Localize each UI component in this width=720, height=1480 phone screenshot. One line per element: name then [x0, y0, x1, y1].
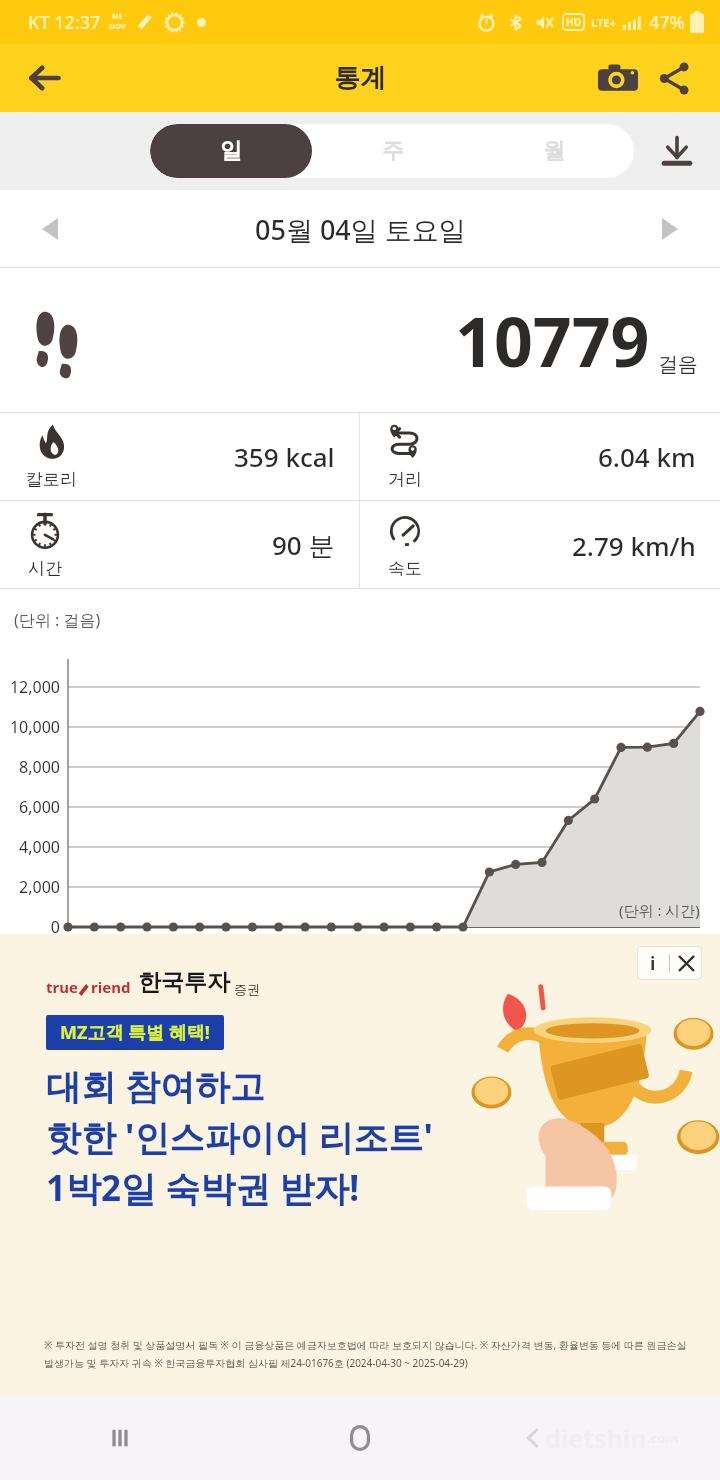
- button[interactable]: Next day: [644, 203, 696, 255]
- staticText: (단위 : 걸음): [14, 609, 101, 631]
- staticText: 6.04 km: [598, 439, 696, 474]
- staticText: 2,000: [0, 876, 60, 898]
- staticText: 시간: [28, 558, 62, 579]
- button[interactable]: 시간: [0, 501, 359, 589]
- button[interactable]: Back: [16, 49, 74, 107]
- staticText: 10779: [455, 294, 650, 387]
- button[interactable]: Share: [646, 50, 702, 106]
- staticText: 22: [631, 939, 663, 964]
- staticText: 대회 참여하고: [46, 1062, 266, 1110]
- staticText: MOV: [109, 22, 126, 32]
- staticText: 10,000: [0, 716, 60, 738]
- staticText: true: [46, 977, 78, 997]
- staticText: LTE+: [591, 15, 616, 30]
- button[interactable]: Ad info: [637, 946, 669, 980]
- staticText: 칼로리: [26, 469, 77, 490]
- staticText: i: [650, 951, 656, 976]
- staticText: 47%: [649, 10, 685, 35]
- staticText: 거리: [388, 469, 422, 490]
- staticText: 1박2일 숙박권 받자!: [46, 1164, 360, 1212]
- staticText: 2.79 km/h: [572, 528, 696, 563]
- button[interactable]: Recents: [0, 1396, 240, 1480]
- staticText: KT 12:37: [28, 10, 101, 35]
- button[interactable]: 속도: [360, 501, 720, 589]
- staticText: riend: [91, 977, 131, 997]
- staticText: HD: [566, 15, 581, 29]
- staticText: 핫한 '인스파이어 리조트': [46, 1113, 433, 1161]
- button[interactable]: 일: [150, 124, 312, 178]
- button[interactable]: Home: [240, 1396, 480, 1480]
- staticText: 24: [684, 939, 716, 964]
- staticText: 통계: [334, 62, 386, 95]
- button[interactable]: Ad info: [0, 934, 720, 1396]
- button[interactable]: Previous day: [24, 203, 76, 255]
- button[interactable]: 거리: [360, 413, 720, 500]
- staticText: 주: [382, 137, 404, 165]
- button[interactable]: 칼로리: [0, 413, 359, 500]
- staticText: 12,000: [0, 676, 60, 698]
- staticText: ME: [112, 12, 123, 22]
- staticText: 걸음: [658, 352, 698, 377]
- staticText: 90 분: [272, 527, 335, 563]
- staticText: 359 kcal: [234, 439, 335, 474]
- button[interactable]: Camera: [590, 50, 646, 106]
- staticText: 한국투자: [138, 968, 230, 997]
- staticText: ※ 투자전 설명 청취 및 상품설명서 필독 ※ 이 금융상품은 예금자보호법에…: [44, 1338, 700, 1352]
- staticText: 월: [543, 137, 565, 165]
- button[interactable]: Download: [648, 122, 706, 180]
- staticText: (단위 : 시간): [619, 900, 700, 920]
- button[interactable]: Close ad: [670, 946, 702, 980]
- staticText: MZ고객 특별 혜택!: [60, 1020, 210, 1045]
- button[interactable]: 월: [473, 124, 634, 178]
- staticText: 05월 04일 토요일: [255, 211, 466, 248]
- staticText: 4,000: [0, 836, 60, 858]
- staticText: 6,000: [0, 796, 60, 818]
- staticText: 8,000: [0, 756, 60, 778]
- staticText: 일: [220, 137, 242, 165]
- staticText: 0: [0, 916, 60, 938]
- staticText: 발생가능 및 투자자 귀속 ※ 한국금융투자협회 심사필 제24-01676호 …: [44, 1356, 468, 1370]
- staticText: 속도: [388, 558, 422, 579]
- staticText: 증권: [234, 981, 260, 997]
- button[interactable]: 주: [312, 124, 473, 178]
